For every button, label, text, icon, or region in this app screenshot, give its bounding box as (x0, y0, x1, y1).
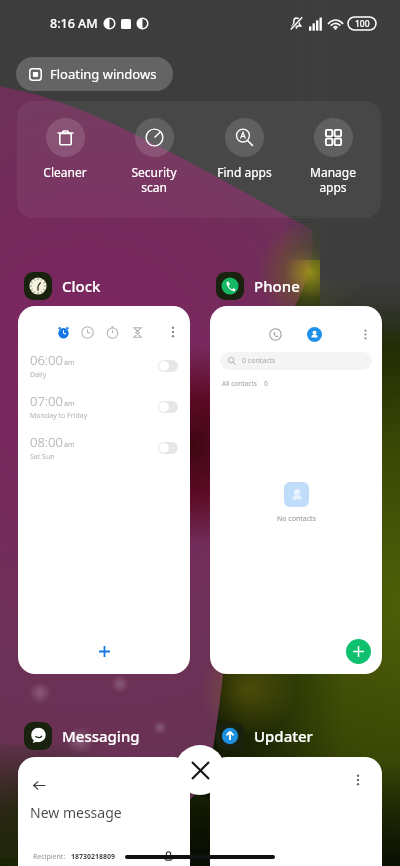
staticText: 07:00 (30, 392, 63, 410)
button[interactable]: Close all (175, 745, 225, 795)
staticText: No contacts (277, 514, 316, 524)
staticText: Cleaner (43, 164, 87, 180)
staticText: New message (30, 803, 122, 822)
button[interactable]: Phone (216, 272, 300, 300)
button[interactable]: Cleaner (23, 101, 107, 180)
button[interactable]: 06:00 (18, 306, 190, 674)
button[interactable]: Clock (24, 272, 101, 300)
staticText: 08:00 (30, 433, 63, 451)
staticText: Recipient: (33, 852, 66, 862)
staticText: Daily (30, 370, 47, 380)
staticText: Messaging (62, 726, 140, 746)
button[interactable]: Toggle alarm (158, 442, 178, 454)
button[interactable]: Updater (216, 722, 313, 750)
staticText: Manage apps (310, 164, 356, 195)
button[interactable]: Find apps (202, 101, 286, 180)
staticText: am (64, 440, 75, 450)
staticText: Sat Sun (30, 452, 55, 462)
staticText: Security scan (131, 164, 177, 195)
button[interactable]: More options (210, 757, 382, 866)
staticText: 8:16 AM (50, 15, 98, 32)
staticText: Monday to Friday (30, 411, 88, 421)
staticText: am (64, 358, 75, 368)
staticText: Floating windows (50, 65, 157, 83)
button[interactable]: Toggle alarm (158, 401, 178, 413)
button[interactable]: Back (18, 757, 190, 866)
staticText: 06:00 (30, 351, 63, 369)
button[interactable]: Messaging (24, 722, 140, 750)
staticText: All contacts (222, 379, 257, 388)
staticText: 0 contacts (242, 356, 276, 366)
button[interactable]: Security scan (112, 101, 196, 195)
staticText: Clock (62, 276, 101, 296)
staticText: Find apps (217, 164, 272, 180)
button[interactable]: Add alarm (91, 638, 117, 664)
staticText: 100 (355, 18, 370, 30)
staticText: am (64, 399, 75, 409)
button[interactable]: Toggle alarm (158, 360, 178, 372)
button[interactable]: Add contact (346, 639, 371, 664)
staticText: 18730218809 (71, 852, 116, 862)
button[interactable]: More options (348, 770, 368, 790)
button[interactable]: Back (29, 775, 49, 795)
button[interactable]: Manage apps (291, 101, 375, 195)
button[interactable]: 0 contacts (210, 306, 382, 674)
button[interactable]: Floating windows (16, 57, 173, 91)
staticText: 0 (264, 379, 268, 388)
staticText: Updater (254, 726, 313, 746)
button[interactable]: 0 contacts (220, 352, 372, 370)
staticText: Phone (254, 276, 300, 296)
